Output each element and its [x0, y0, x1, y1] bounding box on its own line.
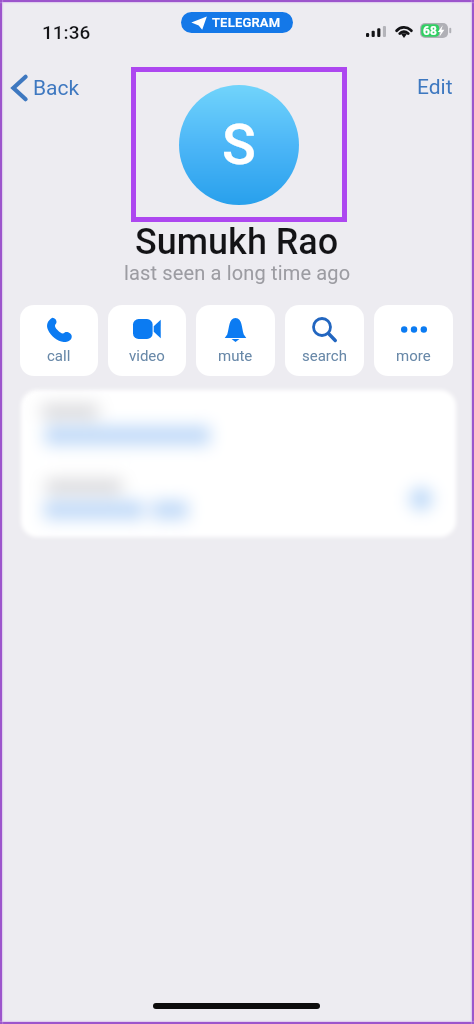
- button[interactable]: search: [285, 305, 364, 376]
- staticText: last seen a long time ago: [124, 261, 351, 284]
- staticText: Back: [33, 76, 80, 101]
- button[interactable]: video: [108, 305, 186, 376]
- button[interactable]: Profile photo: [179, 85, 299, 205]
- staticText: 68: [423, 24, 437, 38]
- staticText: video: [129, 347, 165, 365]
- button[interactable]: call: [20, 305, 98, 376]
- button[interactable]: Edit: [407, 70, 463, 105]
- staticText: more: [396, 347, 431, 365]
- staticText: search: [302, 347, 347, 365]
- staticText: mute: [218, 347, 253, 365]
- staticText: S: [222, 112, 256, 178]
- staticText: Edit: [417, 75, 453, 100]
- button[interactable]: Back: [6, 70, 88, 106]
- staticText: TELEGRAM: [212, 15, 281, 30]
- staticText: Sumukh Rao: [135, 221, 339, 263]
- staticText: call: [47, 347, 71, 365]
- button[interactable]: mute: [196, 305, 275, 376]
- button[interactable]: TELEGRAM: [181, 12, 293, 33]
- button[interactable]: [21, 390, 456, 537]
- staticText: 11:36: [42, 21, 91, 43]
- button[interactable]: more: [374, 305, 453, 376]
